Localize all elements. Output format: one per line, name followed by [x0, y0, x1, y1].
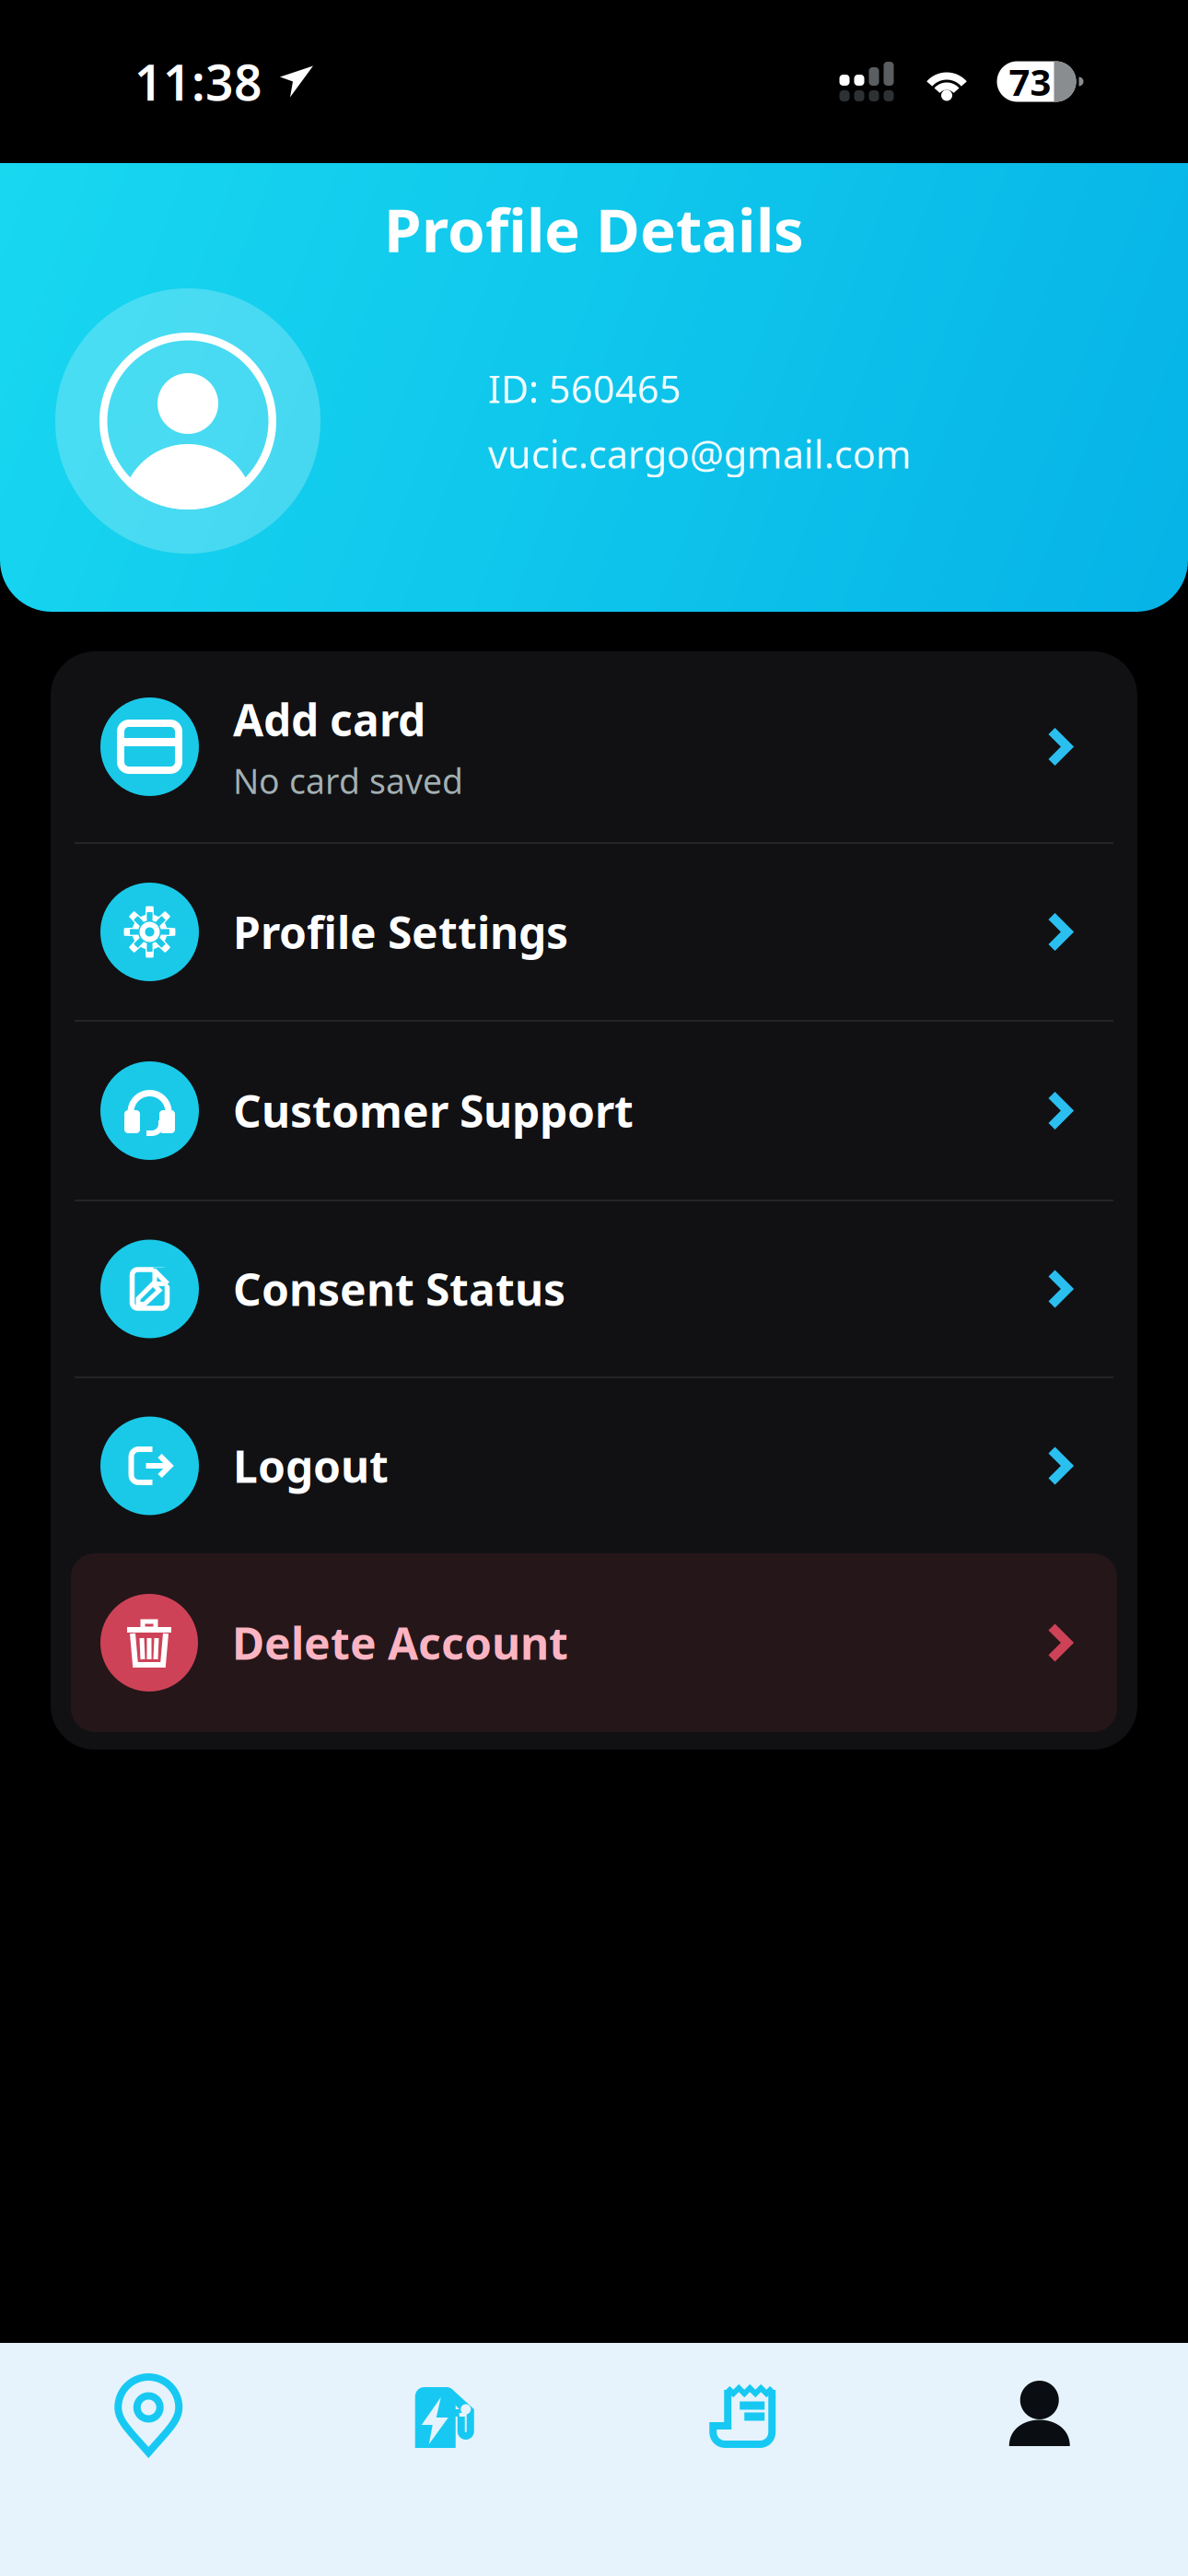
staticText: ID: 560465: [488, 363, 681, 414]
staticText: vucic.cargo@gmail.com: [488, 428, 912, 479]
staticText: 11:38: [134, 49, 262, 114]
staticText: 73: [1009, 57, 1051, 106]
button[interactable]: Profile: [891, 2343, 1188, 2576]
button[interactable]: Receipts: [594, 2343, 891, 2576]
staticText: Profile Details: [384, 189, 804, 269]
button[interactable]: Delete Account: [51, 1553, 1137, 1750]
staticText: Add card: [233, 690, 425, 749]
staticText: Profile Settings: [233, 903, 568, 961]
button[interactable]: Map: [0, 2343, 297, 2576]
staticText: Delete Account: [232, 1613, 568, 1672]
staticText: Customer Support: [233, 1081, 634, 1140]
button[interactable]: Customer Support: [51, 1022, 1137, 1200]
button[interactable]: Add card: [51, 651, 1137, 842]
staticText: Logout: [233, 1436, 389, 1495]
button[interactable]: Consent Status: [51, 1201, 1137, 1376]
button[interactable]: Charging: [297, 2343, 594, 2576]
button[interactable]: Logout: [51, 1378, 1137, 1553]
staticText: Consent Status: [233, 1260, 565, 1318]
staticText: No card saved: [233, 758, 463, 804]
button[interactable]: Profile Settings: [51, 844, 1137, 1020]
